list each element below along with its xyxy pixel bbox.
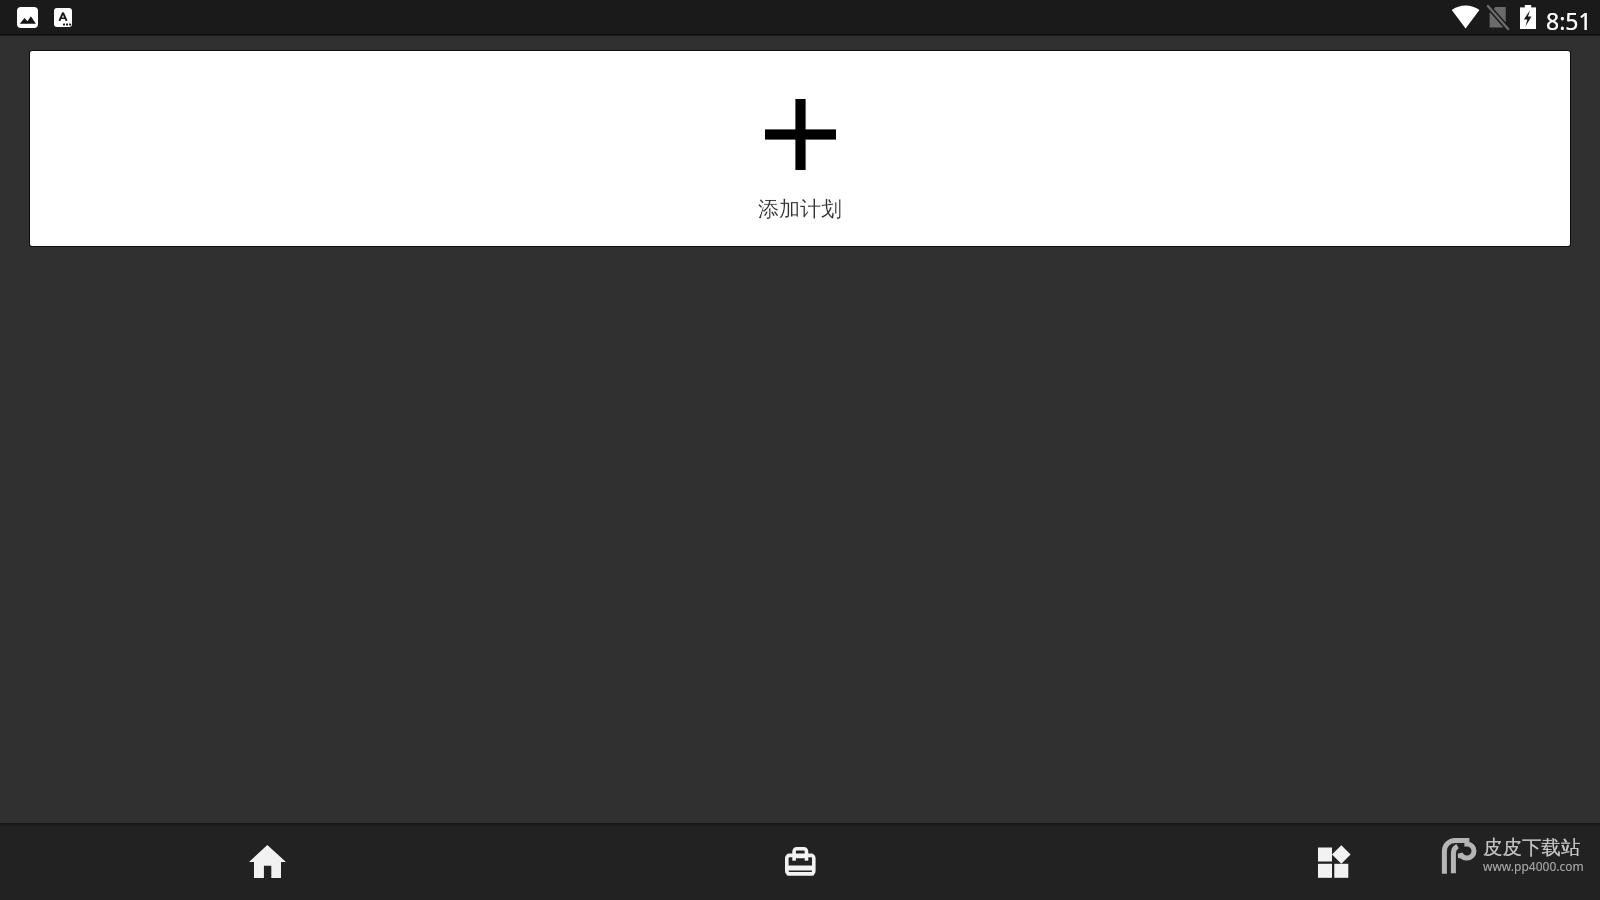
staticText: 添加计划 [30, 196, 1570, 222]
button[interactable]: Home [0, 823, 534, 900]
button[interactable]: Work [534, 823, 1067, 900]
button[interactable]: 添加计划 [30, 51, 1570, 246]
staticText: 皮皮下载站 [1483, 835, 1581, 860]
staticText: www.pp4000.com [1483, 858, 1584, 874]
button[interactable]: Apps [1067, 823, 1600, 900]
staticText: 8:51 [1546, 5, 1592, 36]
